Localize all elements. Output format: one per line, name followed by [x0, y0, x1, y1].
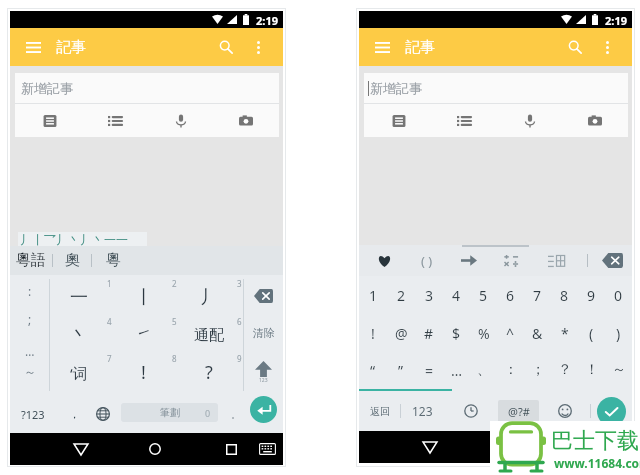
button[interactable]: 新增記事	[364, 73, 628, 103]
button[interactable]: 2	[387, 276, 415, 314]
button[interactable]: :	[14, 276, 46, 306]
button[interactable]: paren	[408, 245, 446, 276]
button[interactable]: Back	[413, 431, 447, 463]
button[interactable]: Recent apps	[214, 433, 248, 465]
button[interactable]: #	[415, 314, 443, 352]
button[interactable]: 粵	[96, 246, 130, 275]
button[interactable]: 6	[497, 276, 524, 314]
button[interactable]: New note	[17, 104, 82, 137]
button[interactable]: Delete	[592, 245, 632, 276]
button[interactable]: list	[537, 245, 575, 276]
staticText: ～	[612, 361, 626, 379]
button[interactable]: ～	[14, 356, 46, 386]
button[interactable]: Home	[138, 433, 172, 465]
staticText: 2	[397, 286, 406, 305]
button[interactable]: 奧	[55, 246, 90, 275]
button[interactable]: New list	[431, 104, 496, 137]
staticText: 筆劃	[160, 406, 180, 419]
button[interactable]: 丨	[114, 277, 179, 314]
button[interactable]: Photo note	[213, 104, 278, 137]
button[interactable]: ？	[551, 351, 578, 389]
staticText: 0	[205, 407, 211, 419]
button[interactable]: ‘词	[49, 352, 114, 389]
button[interactable]: Photo note	[562, 104, 627, 137]
button[interactable]: ：	[497, 351, 524, 389]
button[interactable]: =	[415, 351, 443, 389]
button[interactable]: Search	[209, 30, 243, 64]
button[interactable]: Confirm	[591, 391, 632, 431]
button[interactable]: math	[493, 245, 531, 276]
button[interactable]: @?#	[498, 400, 539, 423]
button[interactable]: 筆劃	[121, 403, 218, 422]
button[interactable]: 。	[222, 395, 248, 433]
button[interactable]: 丶	[49, 315, 114, 352]
staticText: #	[424, 324, 434, 343]
button[interactable]: 粵語	[10, 246, 52, 275]
button[interactable]: New note	[366, 104, 431, 137]
staticText: %	[478, 324, 490, 343]
button[interactable]: 8	[551, 276, 578, 314]
button[interactable]: 0	[605, 276, 632, 314]
button[interactable]: Voice note	[148, 104, 213, 137]
button[interactable]: Navigation menu	[19, 33, 47, 61]
button[interactable]: Enter	[244, 390, 283, 428]
button[interactable]: Shift to numbers	[244, 353, 283, 391]
button[interactable]: More options	[593, 33, 621, 61]
button[interactable]: ^	[497, 314, 524, 352]
button[interactable]: 一	[49, 277, 114, 314]
button[interactable]: 、	[470, 351, 497, 389]
staticText: &	[532, 324, 543, 343]
button[interactable]: 7	[524, 276, 551, 314]
button[interactable]: …	[443, 351, 470, 389]
button[interactable]: ；	[524, 351, 551, 389]
button[interactable]: 通配	[179, 315, 244, 352]
button[interactable]: !	[114, 352, 179, 389]
staticText: 丿丨乛丿丶丿丶一一	[20, 232, 128, 246]
button[interactable]: (	[578, 314, 605, 352]
button[interactable]: ！	[578, 351, 605, 389]
button[interactable]: Back	[64, 433, 98, 465]
button[interactable]: ㇀	[114, 315, 179, 352]
button[interactable]: 123	[401, 391, 443, 431]
button[interactable]: $	[443, 314, 470, 352]
button[interactable]: !	[359, 314, 387, 352]
button[interactable]: )	[605, 314, 632, 352]
button[interactable]: *	[551, 314, 578, 352]
button[interactable]: ;	[14, 304, 46, 334]
staticText: 通配	[194, 326, 224, 345]
button[interactable]: heart	[365, 245, 403, 276]
button[interactable]: Search	[558, 30, 592, 64]
button[interactable]: 返回	[359, 391, 400, 431]
button[interactable]: arrow	[450, 245, 488, 276]
button[interactable]: ”	[387, 351, 415, 389]
button[interactable]: …	[14, 336, 46, 366]
button[interactable]: 3	[415, 276, 443, 314]
button[interactable]: Emoji	[539, 391, 590, 431]
button[interactable]: 4	[443, 276, 470, 314]
button[interactable]: Change keyboard language	[88, 395, 118, 433]
button[interactable]: ?123	[10, 395, 56, 433]
button[interactable]: Home	[487, 431, 521, 463]
button[interactable]: More options	[244, 33, 272, 61]
button[interactable]: @	[387, 314, 415, 352]
button[interactable]: Voice note	[497, 104, 562, 137]
button[interactable]: Navigation menu	[368, 33, 396, 61]
button[interactable]: Delete	[244, 277, 283, 315]
button[interactable]: 9	[578, 276, 605, 314]
button[interactable]: “	[359, 351, 387, 389]
button[interactable]: 5	[470, 276, 497, 314]
button[interactable]: ?	[179, 352, 244, 389]
button[interactable]: Recent apps	[563, 431, 597, 463]
button[interactable]: 1	[359, 276, 387, 314]
button[interactable]: 新增記事	[15, 73, 279, 103]
button[interactable]: ～	[605, 351, 632, 389]
button[interactable]: Switch keyboard	[250, 433, 284, 465]
button[interactable]: %	[470, 314, 497, 352]
button[interactable]: &	[524, 314, 551, 352]
button[interactable]: Recent symbols	[443, 391, 498, 431]
button[interactable]: 丿	[179, 277, 244, 314]
button[interactable]: New list	[82, 104, 147, 137]
staticText: …	[25, 343, 35, 359]
button[interactable]: ，	[58, 395, 90, 433]
button[interactable]: 清除	[244, 314, 283, 352]
